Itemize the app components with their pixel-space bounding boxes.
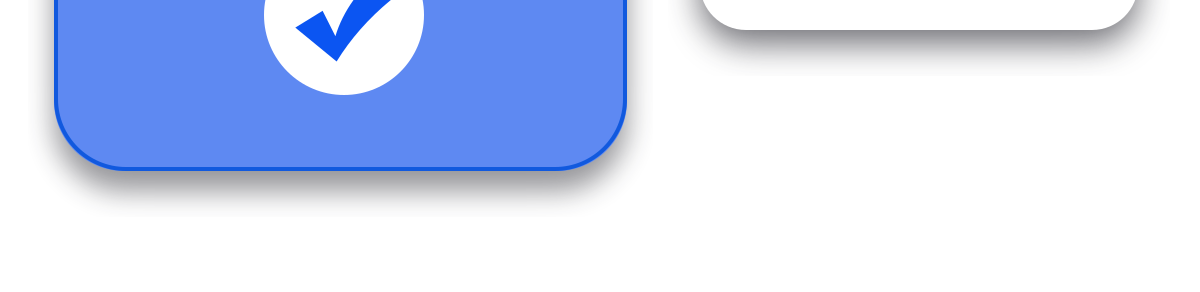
button[interactable]: Selected card bbox=[54, 0, 627, 171]
button[interactable]: Card bbox=[700, 0, 1138, 30]
